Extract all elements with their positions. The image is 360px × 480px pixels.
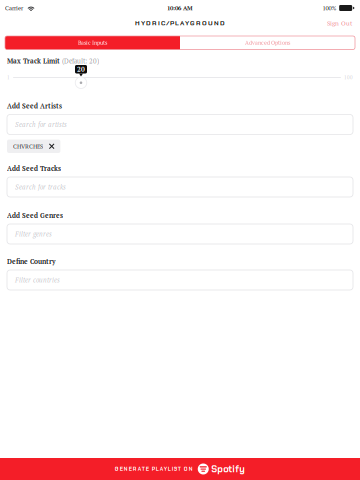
button[interactable]: CHVRCHES	[7, 139, 60, 153]
staticText: Advanced Options	[245, 39, 290, 46]
staticText: Search for artists	[15, 120, 67, 129]
staticText: Add Seed Artists	[7, 102, 62, 110]
staticText: Max Track Limit	[7, 57, 62, 65]
button[interactable]: Basic Inputs	[5, 36, 180, 49]
staticText: CHVRCHES	[13, 142, 43, 150]
staticText: 100	[344, 74, 353, 81]
staticText: 10:06 AM	[167, 4, 193, 12]
staticText: Add Seed Genres	[7, 211, 63, 220]
staticText: G E N E R A T E P L A Y L I S T O N	[115, 465, 193, 472]
staticText: Filter genres	[15, 230, 52, 238]
staticText: Add Seed Tracks	[7, 164, 61, 173]
button[interactable]: Search for tracks	[7, 177, 353, 197]
staticText: Sign Out	[327, 19, 352, 27]
button[interactable]: Advanced Options	[180, 36, 355, 49]
staticText: Search for tracks	[15, 183, 66, 191]
staticText: 20	[77, 65, 85, 74]
staticText: H Y D R I C / P L A Y G R O U N D	[135, 19, 225, 27]
button[interactable]: Filter genres	[7, 224, 353, 244]
staticText: Define Country	[7, 257, 56, 266]
button[interactable]: Search for artists	[7, 114, 353, 134]
button[interactable]: Filter countries	[7, 270, 353, 290]
staticText: 100%	[322, 4, 336, 12]
staticText: Filter countries	[15, 276, 60, 284]
staticText: Carrier	[5, 4, 23, 12]
button[interactable]: G E N E R A T E P L A Y L I S T O N	[0, 458, 360, 480]
staticText: Basic Inputs	[78, 39, 107, 46]
staticText: (Default: 20)	[62, 57, 99, 65]
staticText: 1	[7, 74, 10, 81]
staticText: Spotify	[211, 463, 245, 475]
button[interactable]: Sign Out	[321, 16, 358, 30]
